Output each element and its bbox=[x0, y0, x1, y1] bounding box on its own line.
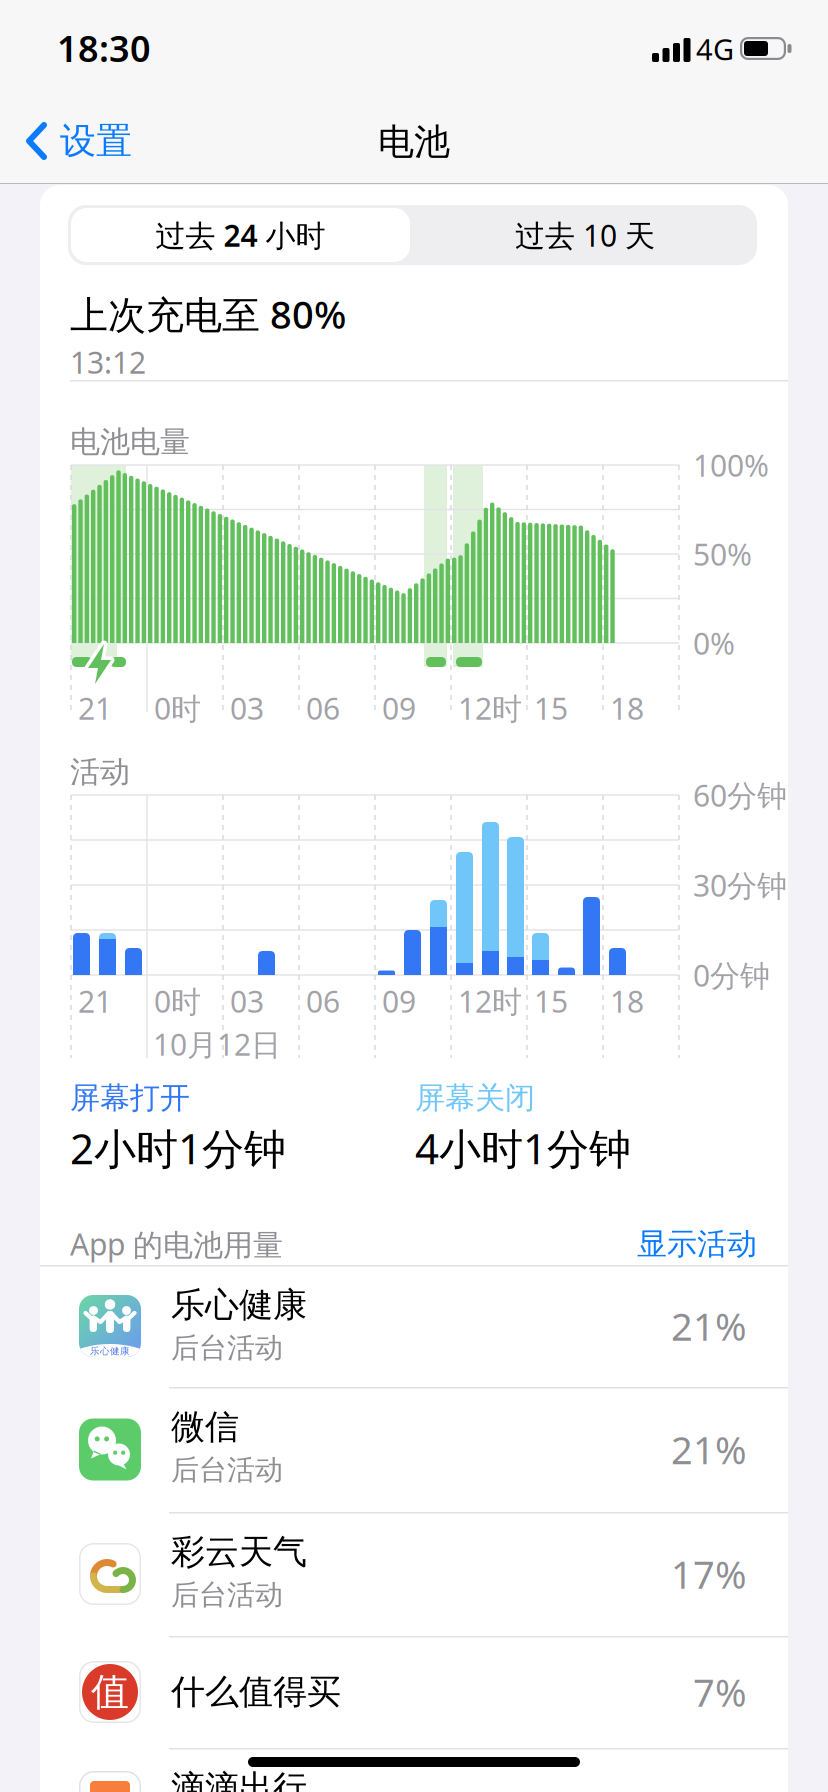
staticText: 值 bbox=[91, 1669, 129, 1715]
staticText: 09 bbox=[382, 688, 416, 728]
staticText: 上次充电至 80% bbox=[70, 289, 346, 339]
staticText: 0% bbox=[693, 623, 735, 663]
button[interactable]: 返回设置 bbox=[26, 119, 132, 163]
staticText: 电池电量 bbox=[70, 424, 190, 460]
staticText: 活动 bbox=[70, 754, 130, 790]
staticText: 后台活动 bbox=[171, 1453, 283, 1487]
staticText: 100% bbox=[693, 445, 769, 485]
staticText: 18 bbox=[610, 981, 644, 1021]
staticText: 21% bbox=[671, 1301, 747, 1351]
staticText: 屏幕关闭 bbox=[415, 1080, 535, 1116]
staticText: 21 bbox=[78, 981, 112, 1021]
staticText: 12时 bbox=[458, 981, 522, 1021]
staticText: 2小时1分钟 bbox=[70, 1120, 286, 1176]
staticText: 4G bbox=[696, 30, 734, 68]
staticText: 过去 24 小时 bbox=[155, 215, 325, 255]
staticText: 18:30 bbox=[57, 24, 151, 72]
staticText: 50% bbox=[693, 534, 752, 574]
button[interactable]: 乐心健康 bbox=[40, 1265, 788, 1387]
staticText: 显示活动 bbox=[637, 1226, 757, 1262]
staticText: 17% bbox=[671, 1549, 747, 1599]
staticText: 0时 bbox=[154, 981, 201, 1021]
staticText: App 的电池用量 bbox=[70, 1224, 283, 1264]
staticText: 18 bbox=[610, 688, 644, 728]
staticText: 06 bbox=[306, 981, 340, 1021]
staticText: 15 bbox=[534, 688, 568, 728]
button[interactable]: 过去 24 小时 bbox=[71, 208, 410, 262]
staticText: 彩云天气 bbox=[171, 1531, 307, 1573]
staticText: 设置 bbox=[60, 119, 132, 163]
staticText: 03 bbox=[230, 688, 264, 728]
staticText: 15 bbox=[534, 981, 568, 1021]
button[interactable]: 彩云天气 bbox=[40, 1512, 788, 1636]
staticText: 09 bbox=[382, 981, 416, 1021]
staticText: 屏幕打开 bbox=[70, 1080, 190, 1116]
staticText: 过去 10 天 bbox=[515, 215, 655, 255]
staticText: 10月12日 bbox=[153, 1024, 281, 1064]
staticText: 0时 bbox=[154, 688, 201, 728]
staticText: 4小时1分钟 bbox=[415, 1120, 631, 1176]
staticText: 21% bbox=[671, 1424, 747, 1475]
staticText: 微信 bbox=[171, 1406, 239, 1448]
button[interactable]: 微信 bbox=[40, 1387, 788, 1512]
staticText: 后台活动 bbox=[171, 1331, 283, 1365]
staticText: 12时 bbox=[458, 688, 522, 728]
staticText: 乐心健康 bbox=[90, 1345, 130, 1357]
staticText: 电池 bbox=[378, 120, 450, 164]
staticText: 什么值得买 bbox=[171, 1671, 341, 1713]
staticText: 0分钟 bbox=[693, 955, 770, 995]
staticText: 06 bbox=[306, 688, 340, 728]
staticText: 乐心健康 bbox=[171, 1284, 307, 1326]
button[interactable]: 过去 10 天 bbox=[413, 205, 757, 265]
staticText: 21 bbox=[78, 688, 112, 728]
staticText: 30分钟 bbox=[693, 865, 787, 905]
button[interactable]: 值 bbox=[40, 1636, 788, 1748]
staticText: 滴滴出行 bbox=[171, 1767, 307, 1792]
button[interactable]: 显示活动 bbox=[557, 1226, 757, 1262]
staticText: 60分钟 bbox=[693, 775, 787, 815]
button[interactable]: 滴滴出行 bbox=[40, 1748, 788, 1792]
staticText: 13:12 bbox=[70, 342, 146, 382]
staticText: 03 bbox=[230, 981, 264, 1021]
staticText: 7% bbox=[693, 1667, 747, 1717]
staticText: 后台活动 bbox=[171, 1578, 283, 1612]
